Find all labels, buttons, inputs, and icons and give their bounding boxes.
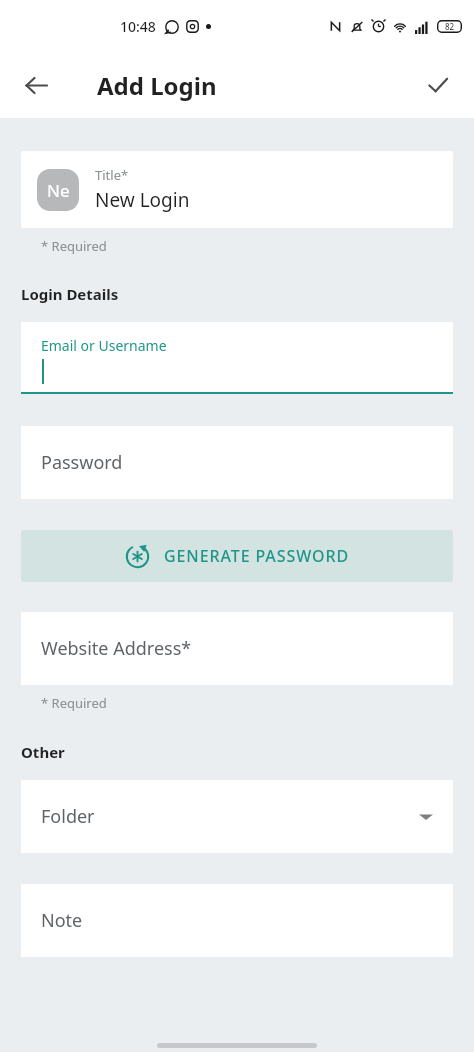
staticText: New Login <box>95 187 190 213</box>
staticText: Ne <box>47 179 70 202</box>
staticText: Password <box>41 450 123 475</box>
staticText: GENERATE PASSWORD <box>164 545 349 567</box>
button[interactable]: Password <box>21 426 453 499</box>
button[interactable]: Save <box>414 61 462 109</box>
button[interactable]: Folder <box>21 780 453 853</box>
staticText: Email or Username <box>41 336 167 355</box>
staticText: Title* <box>95 166 129 184</box>
button[interactable]: Note <box>21 884 453 957</box>
staticText: Note <box>41 908 83 933</box>
staticText: Folder <box>41 804 95 829</box>
staticText: 82 <box>445 21 455 32</box>
staticText: Login Details <box>21 284 119 304</box>
button[interactable]: Email or Username <box>21 322 453 394</box>
staticText: * Required <box>41 237 107 255</box>
button[interactable]: GENERATE PASSWORD <box>21 530 453 582</box>
button[interactable]: Back <box>12 61 60 109</box>
button[interactable]: Ne <box>21 151 453 228</box>
button[interactable]: Website Address* <box>21 612 453 685</box>
staticText: Add Login <box>97 69 217 102</box>
staticText: 10:48 <box>120 17 156 36</box>
staticText: * Required <box>41 694 107 712</box>
staticText: Other <box>21 742 65 762</box>
staticText: Website Address* <box>41 636 192 661</box>
